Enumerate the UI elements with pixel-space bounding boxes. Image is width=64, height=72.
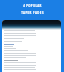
staticText: 4 POPULAR [23, 4, 42, 8]
button[interactable]: 4 POPULAR [0, 0, 64, 15]
staticText: TAPER FADES [21, 11, 44, 15]
button[interactable] [2, 20, 61, 72]
